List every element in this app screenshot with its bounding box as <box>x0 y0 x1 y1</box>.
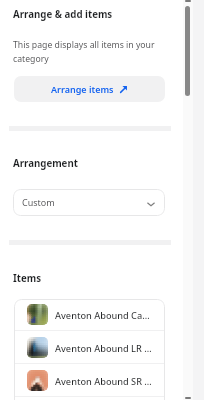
staticText: Arrangement <box>13 157 78 170</box>
staticText: Aventon Abound Ca… <box>55 309 150 322</box>
staticText: Arrange & add items <box>13 8 113 21</box>
button[interactable]: Custom <box>13 189 165 216</box>
other: Scroll <box>185 6 190 96</box>
staticText: Custom <box>22 196 55 208</box>
button[interactable]: Arrange items <box>14 76 165 102</box>
staticText: Arrange items <box>51 83 114 95</box>
staticText: This page displays all items in your cat… <box>13 39 165 64</box>
staticText: Aventon Abound SR … <box>55 375 152 388</box>
staticText: Aventon Abound LR … <box>55 342 152 355</box>
staticText: Items <box>13 272 42 285</box>
button[interactable]: Aventon Abound LR … <box>14 331 165 363</box>
button[interactable]: Aventon Abound Ca… <box>14 299 165 330</box>
other: Expand <box>146 199 156 209</box>
button[interactable]: Aventon Abound SR … <box>14 364 165 396</box>
